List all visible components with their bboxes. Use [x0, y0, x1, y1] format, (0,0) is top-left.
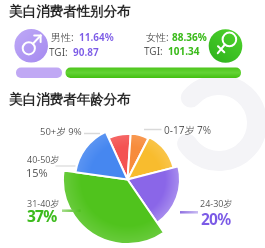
staticText: 男性: [51, 30, 79, 44]
staticText: 女性: [146, 30, 172, 44]
staticText: 37% [27, 205, 57, 226]
staticText: 90.87 [73, 45, 99, 59]
staticText: 15% [26, 165, 48, 180]
staticText: 31-40岁 [27, 197, 60, 209]
staticText: 11.64% [79, 30, 114, 44]
staticText: 88.36% [172, 30, 207, 44]
staticText: 24-30岁 [200, 197, 233, 209]
staticText: 美白消费者年龄分布 [9, 91, 131, 108]
staticText: 美白消费者性别分布 [9, 3, 131, 20]
staticText: 50+岁 9% [40, 125, 82, 138]
staticText: 20% [201, 208, 231, 229]
staticText: TGI: [49, 45, 73, 59]
staticText: 101.34 [168, 44, 200, 58]
staticText: TGI: [144, 44, 168, 58]
staticText: 40-50岁 [27, 153, 60, 165]
staticText: 0-17岁 7% [164, 123, 212, 137]
